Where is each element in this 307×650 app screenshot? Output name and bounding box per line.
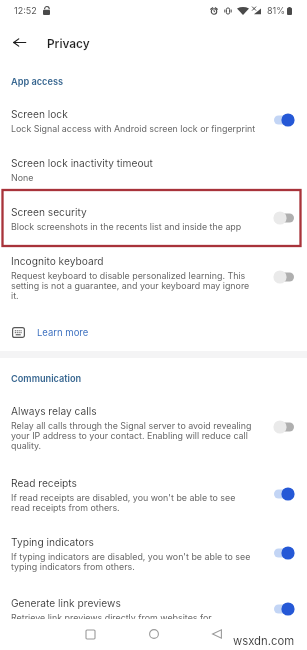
- staticText: Incognito keyboard: [11, 255, 104, 267]
- staticText: Block screenshots in the recents list an…: [11, 221, 242, 232]
- staticText: Learn more: [37, 327, 89, 338]
- staticText: wsxdn.com: [233, 634, 295, 648]
- staticText: 12:52: [14, 5, 37, 16]
- button[interactable]: Screen lock inactivity timeout: [0, 154, 307, 186]
- button[interactable]: Always relay calls: [0, 402, 307, 454]
- staticText: Screen lock: [11, 108, 68, 120]
- staticText: Typing indicators: [11, 536, 94, 548]
- button[interactable]: Home: [142, 622, 166, 646]
- button[interactable]: Screen lock: [0, 105, 307, 137]
- button[interactable]: Toggle: [273, 546, 295, 560]
- staticText: Communication: [11, 373, 82, 384]
- button[interactable]: Toggle: [273, 487, 295, 501]
- button[interactable]: Learn more: [0, 325, 307, 340]
- staticText: Read receipts: [11, 477, 77, 489]
- staticText: Screen lock inactivity timeout: [11, 157, 153, 169]
- button[interactable]: Typing indicators: [0, 533, 307, 575]
- button[interactable]: Toggle: [273, 113, 295, 127]
- staticText: Relay all calls through the Signal serve…: [11, 420, 256, 451]
- button[interactable]: Incognito keyboard: [0, 252, 307, 304]
- staticText: Retrieve link previews directly from web…: [11, 612, 212, 623]
- button[interactable]: Back: [205, 622, 229, 646]
- staticText: None: [11, 172, 34, 183]
- button[interactable]: Generate link previews: [0, 594, 307, 626]
- button[interactable]: Toggle: [273, 420, 295, 434]
- button[interactable]: Toggle: [273, 211, 295, 225]
- button[interactable]: Recent apps: [78, 622, 102, 646]
- staticText: Lock Signal access with Android screen l…: [11, 123, 256, 134]
- staticText: If read receipts are disabled, you won't…: [11, 492, 256, 513]
- button[interactable]: Toggle: [273, 602, 295, 616]
- staticText: App access: [11, 76, 63, 87]
- staticText: Always relay calls: [11, 405, 97, 417]
- staticText: 81%: [267, 5, 286, 16]
- button[interactable]: Toggle: [273, 270, 295, 284]
- staticText: If typing indicators are disabled, you w…: [11, 551, 256, 572]
- button[interactable]: Read receipts: [0, 474, 307, 516]
- staticText: Request keyboard to disable personalized…: [11, 270, 256, 301]
- staticText: Generate link previews: [11, 597, 121, 609]
- button[interactable]: Navigate up: [4, 27, 34, 57]
- staticText: Screen security: [11, 206, 87, 218]
- staticText: Privacy: [47, 37, 90, 51]
- button[interactable]: Screen security: [0, 203, 307, 235]
